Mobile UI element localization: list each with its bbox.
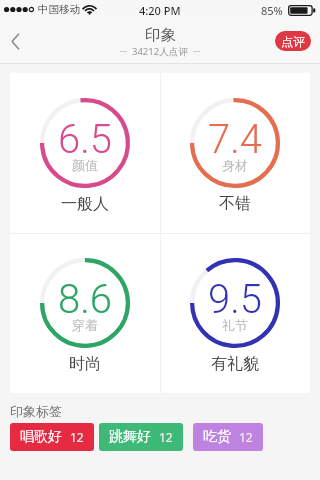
staticText: 12: [239, 429, 253, 445]
button[interactable]: 吃货: [193, 423, 263, 451]
staticText: 不错: [219, 194, 251, 214]
button[interactable]: 6.5: [10, 73, 160, 233]
staticText: 吃货: [203, 428, 231, 446]
staticText: 礼节: [222, 317, 248, 333]
staticText: 印象标签: [10, 403, 62, 419]
staticText: 有礼貌: [211, 354, 259, 374]
button[interactable]: 9.5: [160, 233, 310, 393]
staticText: 时尚: [69, 354, 101, 374]
staticText: 跳舞好: [109, 428, 151, 446]
button[interactable]: Back: [0, 20, 42, 64]
staticText: 7.4: [208, 116, 262, 163]
staticText: 85%: [261, 3, 283, 18]
staticText: 身材: [222, 157, 248, 173]
staticText: 一般人: [61, 194, 109, 214]
staticText: 唱歌好: [20, 428, 62, 446]
staticText: 印象: [145, 25, 176, 45]
staticText: 颜值: [72, 157, 98, 173]
button[interactable]: 跳舞好: [99, 423, 183, 451]
button[interactable]: 点评: [275, 31, 311, 51]
staticText: 点评: [281, 34, 305, 49]
staticText: 4:20 PM: [139, 3, 181, 18]
staticText: 34212人点评: [132, 45, 188, 58]
staticText: 8.6: [58, 276, 112, 323]
staticText: 12: [70, 429, 84, 445]
button[interactable]: 7.4: [160, 73, 310, 233]
button[interactable]: 唱歌好: [10, 423, 94, 451]
button[interactable]: 8.6: [10, 233, 160, 393]
staticText: 6.5: [58, 116, 112, 163]
staticText: 穿着: [72, 317, 98, 333]
staticText: 9.5: [208, 276, 262, 323]
staticText: 12: [159, 429, 173, 445]
staticText: 中国移动: [38, 3, 80, 16]
